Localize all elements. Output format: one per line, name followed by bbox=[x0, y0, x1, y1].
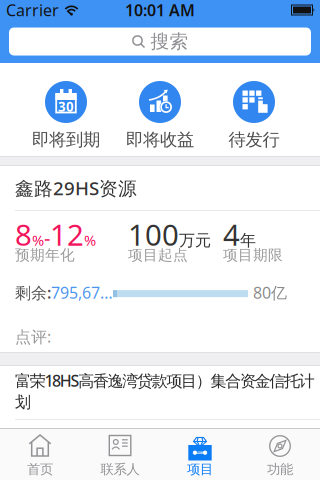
staticText: % bbox=[84, 230, 96, 250]
button[interactable]: 鑫路29HS资源 bbox=[0, 166, 320, 352]
staticText: 联系人 bbox=[100, 461, 139, 477]
staticText: 即将收益 bbox=[126, 129, 194, 150]
staticText: 万元 bbox=[179, 231, 211, 250]
staticText: % bbox=[32, 230, 44, 250]
staticText: 待发行 bbox=[228, 129, 279, 150]
staticText: 剩余: bbox=[15, 282, 51, 303]
staticText: 项目 bbox=[187, 461, 213, 477]
staticText: 30 bbox=[58, 98, 74, 115]
button[interactable]: 待发行 bbox=[207, 63, 301, 150]
staticText: 点评: bbox=[15, 326, 51, 347]
button[interactable]: 首页 bbox=[0, 429, 80, 477]
staticText: 80亿 bbox=[253, 282, 287, 303]
staticText: 鑫路29HS资源 bbox=[15, 176, 137, 200]
staticText: 预期年化 bbox=[15, 246, 75, 264]
staticText: Carrier bbox=[6, 0, 59, 21]
staticText: 首页 bbox=[27, 461, 53, 477]
staticText: 4 bbox=[223, 215, 240, 254]
staticText: 搜索 bbox=[150, 30, 188, 53]
staticText: 8 bbox=[15, 215, 32, 254]
button[interactable]: 项目 bbox=[160, 429, 240, 477]
staticText: 100 bbox=[128, 215, 179, 254]
staticText: 年 bbox=[240, 231, 256, 250]
button[interactable]: 30 bbox=[19, 63, 113, 150]
staticText: 富荣18HS高香逸湾贷款项目）集合资金信托计划 bbox=[15, 370, 315, 412]
button[interactable]: 搜索 bbox=[9, 27, 311, 55]
staticText: 即将到期 bbox=[32, 129, 100, 150]
staticText: 功能 bbox=[267, 461, 293, 477]
button[interactable]: 富荣18HS高香逸湾贷款项目）集合资金信托计划 bbox=[0, 366, 320, 420]
staticText: 12 bbox=[50, 215, 84, 254]
staticText: - bbox=[44, 225, 50, 251]
button[interactable]: 联系人 bbox=[80, 429, 160, 477]
staticText: 项目起点 bbox=[128, 246, 188, 264]
staticText: 795,67… bbox=[51, 282, 113, 303]
staticText: 10:01 AM bbox=[125, 0, 195, 21]
button[interactable]: 功能 bbox=[240, 429, 320, 477]
staticText: 项目期限 bbox=[223, 246, 283, 264]
button[interactable]: 即将收益 bbox=[113, 63, 207, 150]
